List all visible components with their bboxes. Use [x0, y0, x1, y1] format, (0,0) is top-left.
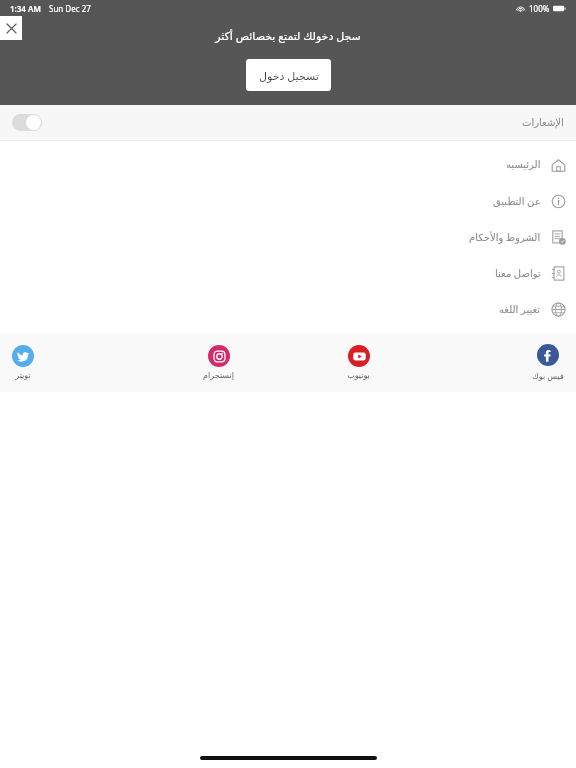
staticText: 1:34 AM	[10, 3, 41, 14]
button[interactable]: تويتر	[8, 343, 38, 382]
button[interactable]: تغيير اللغه	[0, 291, 576, 327]
staticText: الإشعارات	[522, 117, 564, 129]
button[interactable]: يوتيوب	[343, 343, 374, 382]
button[interactable]: تواصل معنا	[0, 255, 576, 291]
button[interactable]: تسجيل دخول	[246, 59, 331, 91]
button[interactable]: الإشعارات	[0, 105, 576, 140]
button[interactable]: Close	[0, 16, 22, 40]
button[interactable]: الشروط والأحكام	[0, 219, 576, 255]
button[interactable]: عن التطبيق	[0, 183, 576, 219]
button[interactable]: إنستجرام	[199, 343, 238, 382]
staticText: 100%	[529, 3, 550, 14]
staticText: فيس بوك	[532, 370, 564, 381]
staticText: Sun Dec 27	[49, 3, 91, 14]
staticText: تسجيل دخول	[259, 68, 319, 83]
button[interactable]: الرئيسيه	[0, 147, 576, 183]
staticText: الشروط والأحكام	[469, 230, 541, 244]
staticText: عن التطبيق	[493, 194, 541, 208]
staticText: يوتيوب	[347, 371, 370, 380]
staticText: الرئيسيه	[506, 159, 541, 171]
staticText: إنستجرام	[203, 371, 234, 380]
staticText: تويتر	[15, 371, 31, 380]
staticText: تغيير اللغه	[499, 302, 541, 316]
staticText: سجل دخولك لتمتع بخصائص أكثر	[215, 28, 361, 43]
staticText: تواصل معنا	[495, 266, 541, 280]
button[interactable]: فيس بوك	[528, 342, 568, 383]
